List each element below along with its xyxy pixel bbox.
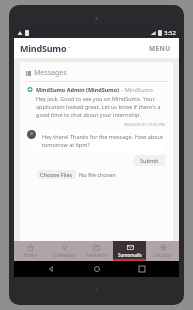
staticText: - MindSumo xyxy=(120,86,153,93)
staticText: 3:52 xyxy=(164,29,176,37)
button[interactable]: Back xyxy=(43,261,59,277)
button[interactable]: Choose Files xyxy=(37,170,76,179)
staticText: Hey there! Thanks for the message. How a… xyxy=(42,133,163,149)
staticText: 08/24/09 01:12:00 PM xyxy=(124,122,165,127)
staticText: MENU xyxy=(149,44,171,53)
staticText: Submit xyxy=(140,157,159,164)
staticText: Choose Files xyxy=(40,171,73,178)
button[interactable]: Home xyxy=(14,241,47,261)
button[interactable]: Submit xyxy=(134,155,165,166)
staticText: Challenges xyxy=(52,252,76,258)
staticText: Settings xyxy=(154,252,172,258)
staticText: MindSumo Admin (MindSumo) xyxy=(36,86,120,93)
button[interactable]: Sumomails xyxy=(113,241,146,261)
button[interactable]: Settings xyxy=(146,241,179,261)
button[interactable]: Home xyxy=(89,261,105,277)
staticText: Sumomails xyxy=(118,252,142,258)
staticText: MindSumo xyxy=(20,42,67,54)
staticText: Hey Jack, Good to see you on MindSumo. Y… xyxy=(36,95,166,119)
staticText: Home xyxy=(24,252,37,258)
staticText: Messages xyxy=(34,68,67,78)
button[interactable]: Hey there! Thanks for the message. How a… xyxy=(39,130,166,152)
staticText: Freelance xyxy=(86,252,107,258)
button[interactable]: Challenges xyxy=(47,241,80,261)
button[interactable]: Recents xyxy=(134,261,150,277)
button[interactable]: Freelance xyxy=(80,241,113,261)
button[interactable]: MENU xyxy=(147,42,173,55)
staticText: No file chosen xyxy=(79,171,116,178)
